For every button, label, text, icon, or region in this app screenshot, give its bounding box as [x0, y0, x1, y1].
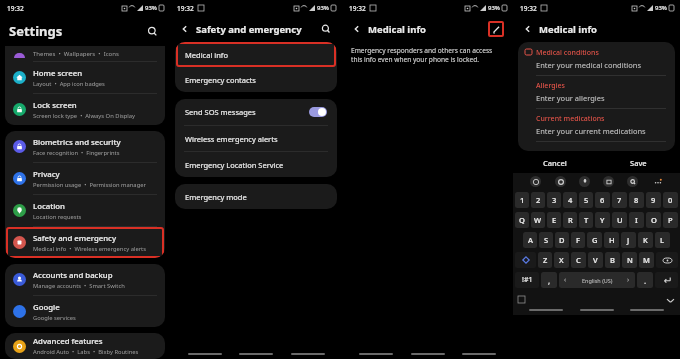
button[interactable]: V [588, 252, 603, 268]
button[interactable]: Comma [541, 272, 557, 288]
button[interactable]: Send SOS messages [185, 99, 327, 125]
button[interactable]: W [531, 212, 545, 228]
button[interactable]: Q [515, 212, 529, 228]
button[interactable]: Voice input [579, 176, 590, 187]
button[interactable]: Allergies [518, 76, 675, 108]
button[interactable]: U [612, 212, 627, 228]
staticText: Emergency Location Service [185, 160, 284, 170]
button[interactable]: Safety and emergency [5, 227, 165, 258]
staticText: Medical info [185, 50, 228, 60]
staticText: Settings [9, 22, 63, 40]
staticText: Emergency mode [185, 192, 247, 202]
button[interactable]: Emergency mode [175, 184, 337, 209]
button[interactable]: Search settings [143, 22, 161, 40]
button[interactable]: 0 [663, 192, 678, 208]
button[interactable]: Emergency Location Service [175, 152, 337, 177]
staticText: 19:32 [177, 4, 194, 13]
button[interactable]: Home screen [5, 62, 165, 93]
staticText: 19:32 [349, 4, 366, 13]
button[interactable]: O [646, 212, 661, 228]
button[interactable]: 8 [629, 192, 644, 208]
button[interactable]: Wireless emergency alerts [175, 126, 337, 151]
button[interactable]: K [638, 232, 653, 248]
button[interactable]: Back [178, 22, 192, 36]
button[interactable]: 3 [547, 192, 561, 208]
button[interactable]: T [579, 212, 593, 228]
button[interactable]: Advanced features [5, 333, 165, 359]
button[interactable]: P [663, 212, 678, 228]
button[interactable]: Edit [487, 20, 505, 38]
button[interactable]: Hide keyboard [665, 295, 675, 305]
button[interactable]: 7 [612, 192, 627, 208]
staticText: 1 [520, 195, 525, 205]
button[interactable]: J [621, 232, 636, 248]
button[interactable]: R [563, 212, 577, 228]
button[interactable]: G [587, 232, 602, 248]
button[interactable]: Translate [603, 176, 614, 187]
button[interactable]: Y [595, 212, 610, 228]
button[interactable]: X [554, 252, 569, 268]
button[interactable]: Medical info [175, 42, 337, 67]
button[interactable]: Biometrics and security [5, 131, 165, 162]
button[interactable]: Emergency contacts [175, 67, 337, 92]
staticText: 93% [488, 4, 500, 12]
button[interactable]: L [655, 232, 670, 248]
button[interactable]: Location [5, 195, 165, 226]
button[interactable]: Settings [555, 176, 566, 187]
button[interactable]: Current medications [518, 109, 675, 141]
button[interactable]: Back [521, 22, 535, 36]
button[interactable]: E [547, 212, 561, 228]
staticText: T [584, 215, 589, 225]
button[interactable]: Accounts and backup [5, 264, 165, 295]
staticText: 5 [584, 195, 589, 205]
button[interactable]: Save [596, 153, 680, 173]
button[interactable]: D [555, 232, 569, 248]
button[interactable]: F [571, 232, 585, 248]
button[interactable]: S [539, 232, 553, 248]
button[interactable]: 5 [579, 192, 593, 208]
button[interactable]: Period [637, 272, 653, 288]
button[interactable]: Lock screen [5, 94, 165, 125]
staticText: Privacy [33, 169, 60, 180]
staticText: Safety and emergency [33, 233, 117, 244]
button[interactable]: Search [318, 21, 334, 37]
button[interactable]: Backspace [656, 252, 678, 268]
button[interactable]: I [629, 212, 644, 228]
button[interactable]: Search [627, 176, 638, 187]
button[interactable]: C [571, 252, 586, 268]
button[interactable]: Emoji [530, 176, 541, 187]
staticText: C [576, 255, 581, 265]
staticText: F [576, 235, 580, 245]
button[interactable]: Privacy [5, 163, 165, 194]
button[interactable]: A [523, 232, 537, 248]
staticText: R [568, 215, 573, 225]
button[interactable]: 4 [563, 192, 577, 208]
button[interactable]: 1 [515, 192, 529, 208]
button[interactable]: Keyboard layout [518, 296, 525, 303]
button[interactable]: Enter [655, 272, 678, 288]
button[interactable]: Back [350, 22, 364, 36]
staticText: , [548, 275, 551, 286]
staticText: X [559, 255, 564, 265]
staticText: ‹ [564, 275, 567, 285]
staticText: Y [600, 215, 605, 225]
button[interactable]: More options [652, 176, 663, 187]
button[interactable]: Shift [515, 252, 536, 268]
button[interactable]: B [605, 252, 620, 268]
button[interactable]: Medical conditions [525, 48, 667, 75]
staticText: Emergency contacts [185, 75, 256, 85]
button[interactable]: 6 [595, 192, 610, 208]
button[interactable]: M [639, 252, 654, 268]
button[interactable]: N [622, 252, 637, 268]
button[interactable]: 9 [646, 192, 661, 208]
staticText: 4 [568, 195, 573, 205]
button[interactable]: Cancel [513, 153, 596, 173]
button[interactable]: Space [559, 272, 635, 288]
button[interactable]: Symbols [515, 272, 539, 288]
button[interactable]: Themes • Wallpapers • Icons [5, 46, 165, 58]
button[interactable]: Google [5, 296, 165, 327]
button[interactable]: H [604, 232, 619, 248]
button[interactable]: Z [538, 252, 552, 268]
staticText: !#1 [522, 275, 533, 285]
button[interactable]: 2 [531, 192, 545, 208]
